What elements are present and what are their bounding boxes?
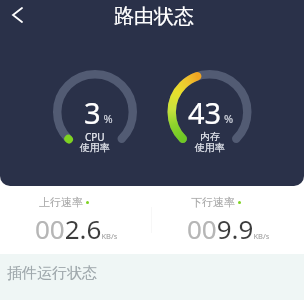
button[interactable]: 插件运行状态 xyxy=(0,254,304,300)
staticText: 使用率 xyxy=(195,141,225,154)
staticText: 使用率 xyxy=(80,141,110,154)
staticText: 下行速率 xyxy=(191,195,235,209)
staticText: 插件运行状态 xyxy=(7,264,97,283)
staticText: 002.6KB/s xyxy=(35,211,118,246)
staticText: 路由状态 xyxy=(114,4,194,29)
staticText: 3 % xyxy=(84,93,113,132)
button[interactable]: 上行速率 xyxy=(0,186,152,254)
staticText: 009.9KB/s xyxy=(187,211,270,246)
button[interactable]: Back xyxy=(4,3,36,35)
staticText: CPU xyxy=(85,130,105,144)
staticText: 内存 xyxy=(200,130,220,143)
staticText: 上行速率 xyxy=(39,195,83,209)
staticText: 43 % xyxy=(188,93,234,132)
button[interactable]: 下行速率 xyxy=(152,186,304,254)
